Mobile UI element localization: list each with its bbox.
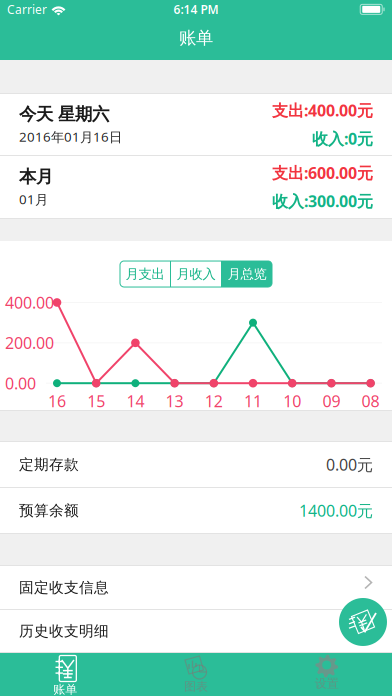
button[interactable]: 月支出 — [120, 261, 170, 287]
button[interactable]: 月总览 — [222, 261, 272, 287]
staticText: 收入:0元 — [312, 128, 373, 149]
staticText: 历史收支明细 — [19, 622, 109, 640]
button[interactable]: 账单 — [0, 653, 131, 696]
staticText: 月总览 — [227, 266, 266, 282]
staticText: 14 — [126, 390, 144, 412]
staticText: Carrier — [7, 1, 47, 17]
button[interactable]: 图表 — [131, 653, 261, 696]
staticText: 本月 — [19, 166, 53, 187]
staticText: 预算余额 — [19, 501, 79, 519]
staticText: 0.00 — [5, 373, 36, 394]
staticText: 收入:300.00元 — [272, 190, 373, 212]
staticText: 11 — [244, 390, 262, 412]
staticText: 月支出 — [125, 266, 164, 282]
staticText: 200.00 — [5, 332, 54, 353]
staticText: 10 — [283, 390, 301, 412]
staticText: 01月 — [19, 190, 48, 208]
staticText: 400.00 — [5, 292, 54, 313]
staticText: 固定收支信息 — [19, 578, 109, 596]
staticText: 账单 — [53, 682, 77, 696]
staticText: 0.00元 — [326, 454, 373, 475]
staticText: 15 — [87, 390, 105, 412]
staticText: 支出:600.00元 — [272, 162, 373, 183]
staticText: 09 — [322, 390, 340, 412]
staticText: 月收入 — [176, 266, 215, 282]
button[interactable]: 设置 — [261, 653, 392, 696]
staticText: 13 — [166, 390, 184, 412]
staticText: 1400.00元 — [299, 500, 373, 521]
staticText: 账单 — [179, 27, 213, 49]
staticText: 2016年01月16日 — [19, 128, 122, 145]
staticText: 今天 星期六 — [19, 103, 109, 125]
staticText: 定期存款 — [19, 455, 79, 473]
staticText: 6:14 PM — [173, 1, 218, 17]
staticText: 支出:400.00元 — [272, 100, 373, 121]
button[interactable]: Add record — [339, 598, 387, 646]
staticText: 12 — [205, 390, 223, 412]
button[interactable]: 月收入 — [171, 261, 221, 287]
staticText: 设置 — [315, 676, 339, 691]
staticText: 图表 — [184, 679, 208, 694]
staticText: 16 — [48, 390, 66, 412]
staticText: 08 — [362, 390, 380, 412]
button[interactable]: 固定收支信息 — [0, 566, 392, 609]
button[interactable]: 历史收支明细 — [0, 610, 392, 652]
